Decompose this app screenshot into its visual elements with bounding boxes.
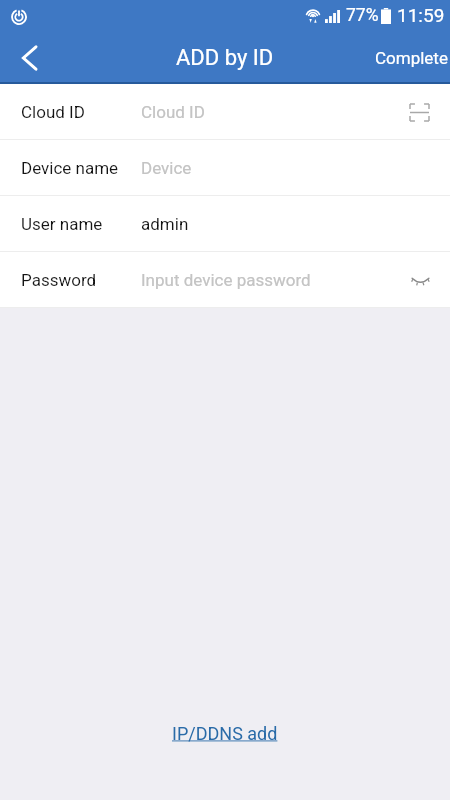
- staticText: 77%: [346, 5, 379, 26]
- staticText: Cloud ID: [21, 102, 85, 122]
- button[interactable]: User name: [0, 196, 450, 251]
- staticText: 11:59: [397, 4, 445, 26]
- staticText: ADD by ID: [176, 45, 274, 71]
- button[interactable]: Device name: [0, 140, 450, 195]
- button[interactable]: Back: [0, 33, 56, 82]
- staticText: admin: [141, 214, 189, 234]
- button[interactable]: Scan QR code: [398, 94, 440, 130]
- staticText: Device: [141, 158, 192, 178]
- staticText: User name: [21, 214, 103, 234]
- button[interactable]: IP/DDNS add: [168, 719, 282, 748]
- staticText: Cloud ID: [141, 102, 205, 122]
- staticText: Input device password: [141, 270, 311, 290]
- button[interactable]: Show password: [400, 262, 440, 298]
- button[interactable]: Complete: [367, 38, 450, 78]
- staticText: Complete: [375, 48, 448, 68]
- button[interactable]: Cloud ID: [0, 84, 450, 139]
- staticText: Password: [21, 270, 97, 290]
- button[interactable]: Password: [0, 252, 450, 307]
- staticText: Device name: [21, 158, 119, 178]
